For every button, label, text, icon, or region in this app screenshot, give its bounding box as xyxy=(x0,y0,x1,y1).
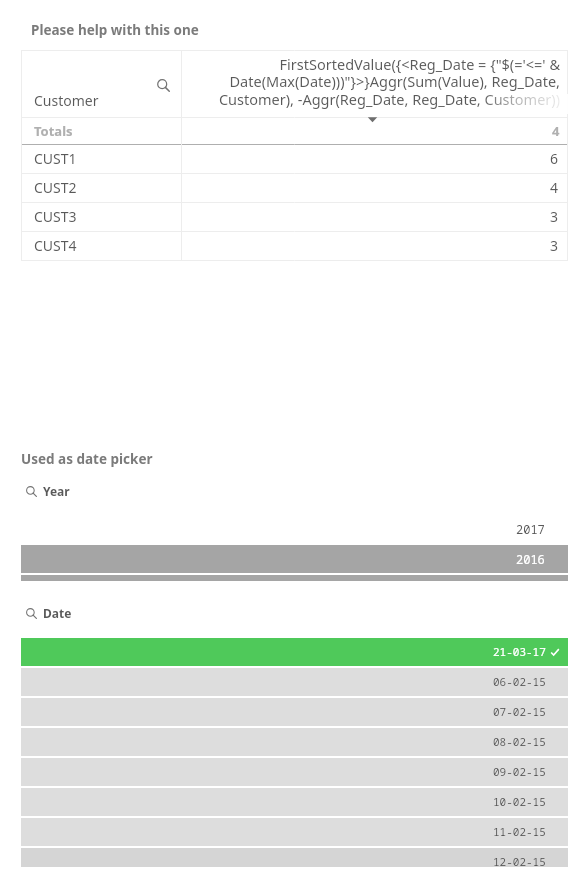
staticText: 4 xyxy=(552,122,560,140)
button[interactable]: 12-02-15 xyxy=(21,848,568,867)
staticText: CUST1 xyxy=(34,149,77,168)
staticText: 6 xyxy=(550,149,559,168)
button[interactable]: Search Year xyxy=(26,483,70,499)
staticText: 2017 xyxy=(516,521,545,537)
staticText: Date xyxy=(43,605,72,621)
staticText: FirstSortedValue({<Reg_Date = {"$(='<=' … xyxy=(181,54,560,110)
staticText: 3 xyxy=(550,236,559,255)
staticText: 4 xyxy=(550,178,559,197)
staticText: CUST2 xyxy=(34,178,77,197)
button[interactable]: Customer xyxy=(21,51,181,118)
button[interactable]: CUST4 xyxy=(21,231,568,260)
staticText: Year xyxy=(43,483,70,499)
staticText: Totals xyxy=(34,122,73,140)
button[interactable]: Search Date xyxy=(26,605,72,621)
staticText: 07-02-15 xyxy=(493,704,546,719)
button[interactable]: 10-02-15 xyxy=(21,788,568,816)
other: Search Date xyxy=(26,608,37,619)
staticText: 12-02-15 xyxy=(493,854,546,867)
other: Search Year xyxy=(26,486,37,497)
button[interactable]: CUST1 xyxy=(21,144,568,173)
button[interactable]: Totals xyxy=(21,117,568,144)
staticText: CUST4 xyxy=(34,236,77,255)
staticText: CUST3 xyxy=(34,207,77,226)
button[interactable]: FirstSortedValue({<Reg_Date = {"$(='<=' … xyxy=(181,51,568,118)
button[interactable]: 2016 xyxy=(21,545,568,573)
staticText: 2016 xyxy=(516,551,545,567)
button[interactable]: 06-02-15 xyxy=(21,668,568,696)
button[interactable]: 11-02-15 xyxy=(21,818,568,846)
button[interactable]: 21-03-17 xyxy=(21,638,568,666)
staticText: 09-02-15 xyxy=(493,764,546,779)
staticText: 3 xyxy=(550,207,559,226)
staticText: 11-02-15 xyxy=(493,824,546,839)
staticText: 08-02-15 xyxy=(493,734,546,749)
staticText: 10-02-15 xyxy=(493,794,546,809)
staticText: 06-02-15 xyxy=(493,674,546,689)
staticText: Please help with this one xyxy=(31,21,199,39)
button[interactable]: 07-02-15 xyxy=(21,698,568,726)
button[interactable]: CUST3 xyxy=(21,202,568,231)
staticText: 21-03-17 xyxy=(493,644,546,659)
staticText: Customer xyxy=(34,91,99,110)
button[interactable]: 2017 xyxy=(21,515,568,543)
staticText: Used as date picker xyxy=(21,450,153,468)
button[interactable]: 09-02-15 xyxy=(21,758,568,786)
button[interactable]: 08-02-15 xyxy=(21,728,568,756)
other: Search dimension xyxy=(157,79,170,92)
button[interactable]: CUST2 xyxy=(21,173,568,202)
